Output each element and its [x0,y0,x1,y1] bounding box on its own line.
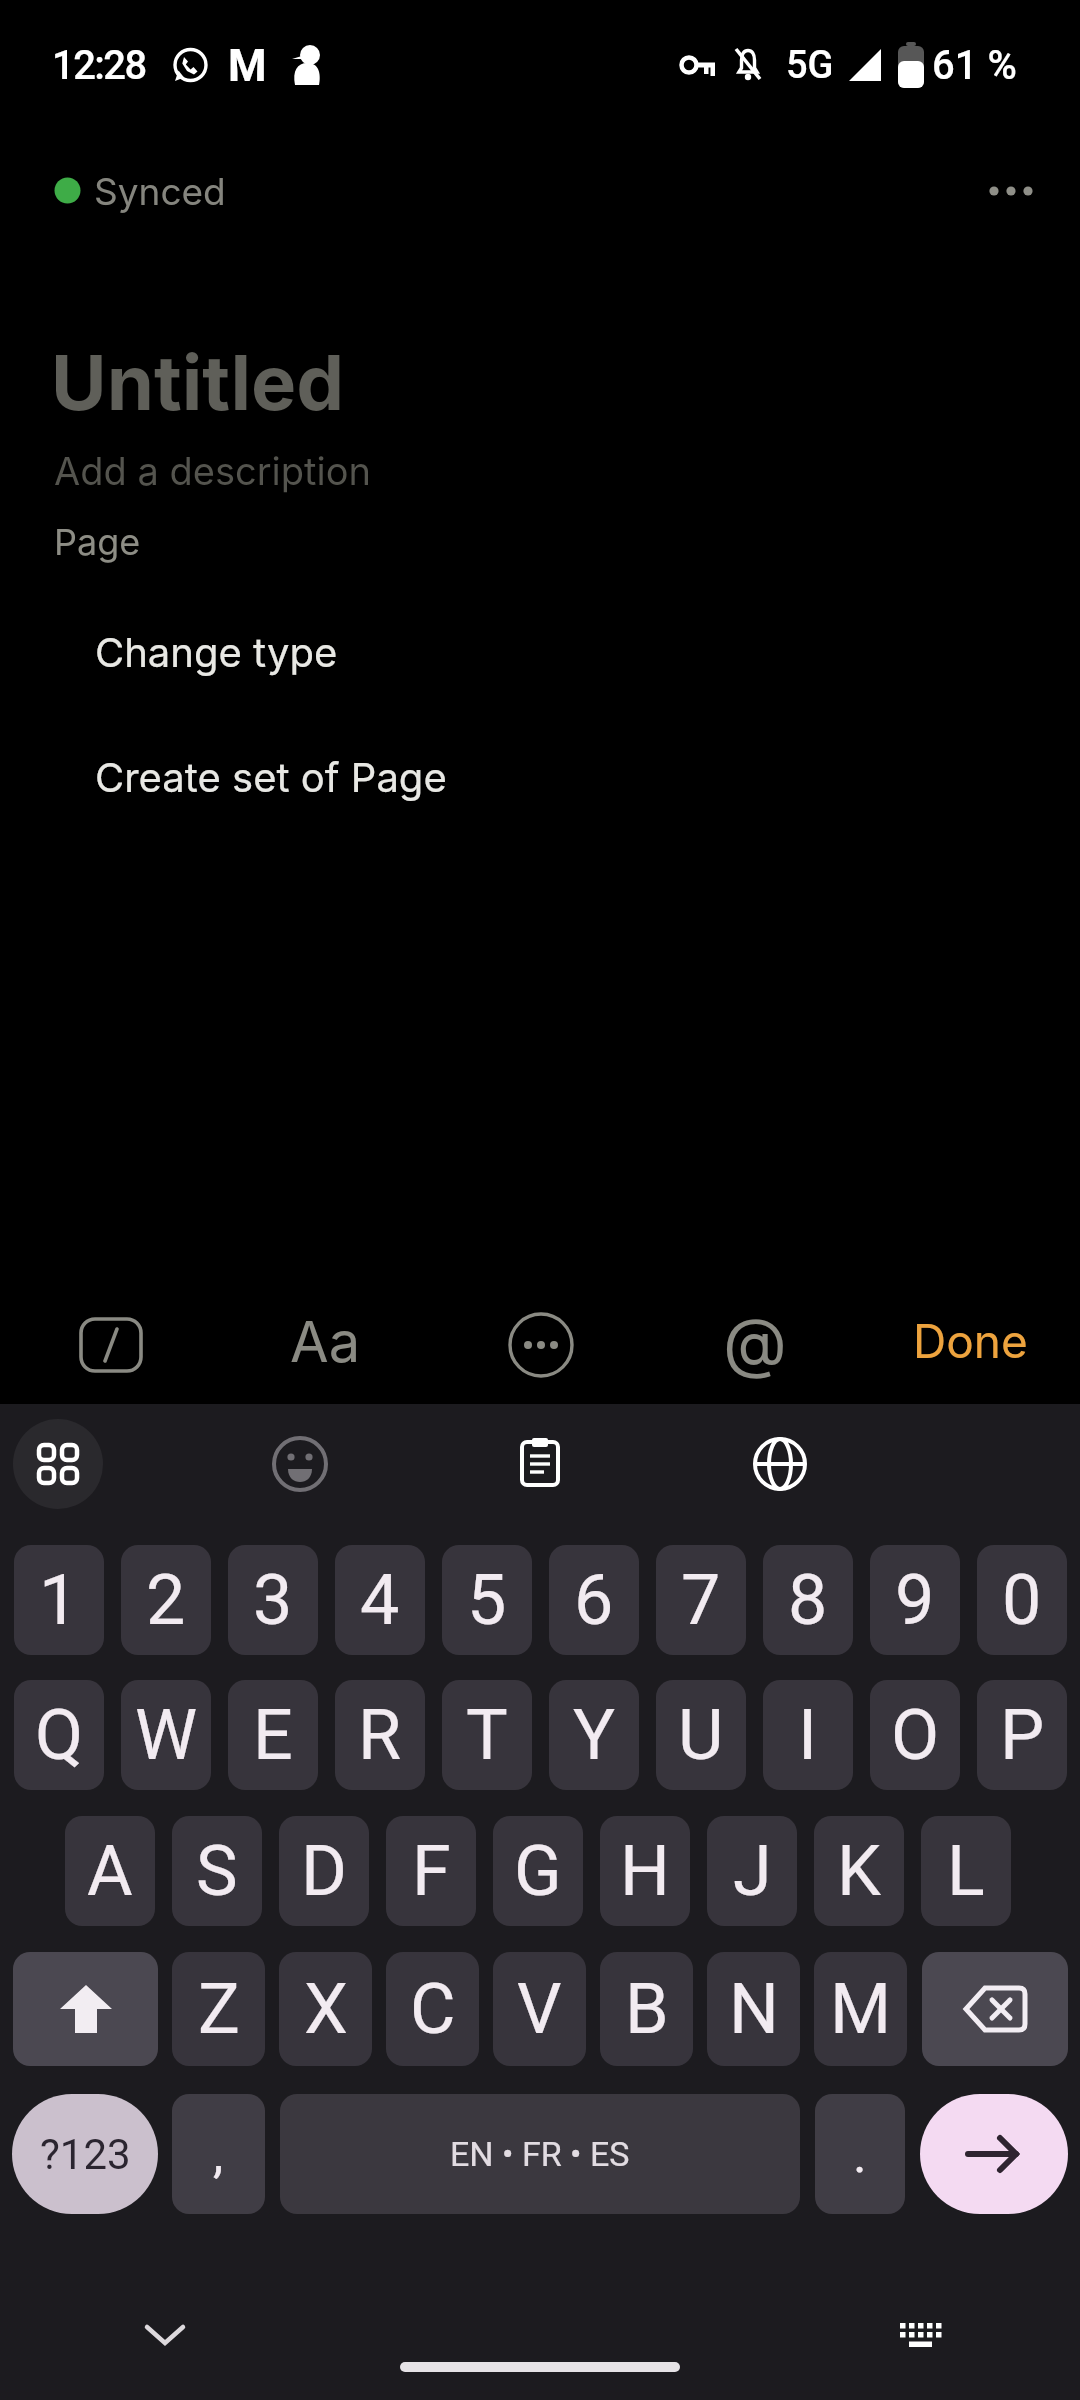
staticText: 12:28 [52,42,146,89]
button[interactable]: 9 [870,1545,960,1655]
button[interactable]: Done [905,1303,1035,1379]
button[interactable]: J [707,1816,797,1926]
button[interactable] [66,1303,156,1387]
button[interactable] [966,158,1056,224]
staticText: M [830,1968,892,2050]
button[interactable]: R [335,1680,425,1790]
staticText: K [837,1830,881,1912]
staticText: C [410,1968,456,2050]
staticText: , [213,2124,224,2185]
button[interactable]: @ [716,1297,794,1387]
button[interactable]: . [815,2094,905,2214]
staticText: Z [198,1968,240,2050]
button[interactable] [13,1952,158,2066]
staticText: T [466,1694,508,1776]
button[interactable]: 4 [335,1545,425,1655]
button[interactable]: U [656,1680,746,1790]
button[interactable]: V [493,1952,586,2066]
staticText: Done [913,1313,1028,1369]
staticText: F [412,1830,451,1912]
button[interactable]: C [386,1952,479,2066]
staticText: I [798,1694,818,1776]
staticText: 5 [467,1559,507,1641]
staticText: 2 [146,1559,186,1641]
staticText: EN • FR • ES [450,2134,630,2174]
button[interactable]: 0 [977,1545,1067,1655]
button[interactable]: E [228,1680,318,1790]
staticText: L [947,1830,985,1912]
staticText: G [514,1830,562,1912]
staticText: 5G [786,43,834,88]
staticText: H [620,1830,670,1912]
button[interactable]: I [763,1680,853,1790]
staticText: ?123 [40,2130,131,2179]
button[interactable]: W [121,1680,211,1790]
staticText: 61 % [932,42,1017,89]
button[interactable] [40,156,300,226]
staticText: Q [35,1694,84,1776]
button[interactable] [496,1300,586,1390]
button[interactable] [495,1417,585,1507]
staticText: Page [54,520,141,564]
button[interactable]: X [279,1952,372,2066]
button[interactable] [922,1952,1068,2066]
button[interactable]: A [65,1816,155,1926]
button[interactable]: , [172,2094,265,2214]
button[interactable]: Y [549,1680,639,1790]
staticText: N [729,1968,779,2050]
button[interactable] [120,2300,210,2370]
button[interactable] [880,2300,960,2370]
button[interactable]: M [814,1952,907,2066]
staticText: Change type [95,628,338,676]
staticText: 6 [574,1559,614,1641]
button[interactable] [735,1419,825,1509]
staticText: X [304,1968,348,2050]
staticText: O [891,1694,940,1776]
staticText: P [1000,1694,1045,1776]
button[interactable]: Change type [95,623,515,681]
button[interactable] [920,2094,1068,2214]
button[interactable]: Create set of Page [95,748,575,806]
button[interactable]: N [707,1952,800,2066]
button[interactable]: Z [172,1952,265,2066]
button[interactable]: ?123 [12,2094,158,2214]
button[interactable]: O [870,1680,960,1790]
staticText: M [228,40,267,90]
staticText: 8 [788,1559,828,1641]
button[interactable]: 2 [121,1545,211,1655]
button[interactable] [13,1419,103,1509]
staticText: E [253,1694,293,1776]
staticText: R [358,1694,402,1776]
staticText: Add a description [54,448,371,494]
staticText: 1 [39,1559,79,1641]
button[interactable]: 3 [228,1545,318,1655]
button[interactable]: 5 [442,1545,532,1655]
button[interactable]: K [814,1816,904,1926]
staticText: 0 [1002,1559,1042,1641]
button[interactable]: S [172,1816,262,1926]
button[interactable]: 6 [549,1545,639,1655]
button[interactable]: H [600,1816,690,1926]
button[interactable]: 1 [14,1545,104,1655]
button[interactable]: 7 [656,1545,746,1655]
staticText: A [87,1830,133,1912]
button[interactable]: F [386,1816,476,1926]
button[interactable]: P [977,1680,1067,1790]
staticText: 4 [360,1559,400,1641]
staticText: J [733,1830,772,1912]
button[interactable] [255,1419,345,1509]
button[interactable]: D [279,1816,369,1926]
button[interactable]: Aa [283,1302,367,1382]
staticText: V [517,1968,562,2050]
button[interactable]: T [442,1680,532,1790]
staticText: S [196,1830,238,1912]
staticText: Untitled [51,336,345,428]
staticText: Aa [290,1308,361,1376]
button[interactable]: EN • FR • ES [280,2094,800,2214]
button[interactable]: B [600,1952,693,2066]
button[interactable]: 8 [763,1545,853,1655]
button[interactable]: L [921,1816,1011,1926]
button[interactable]: Q [14,1680,104,1790]
button[interactable]: G [493,1816,583,1926]
staticText: . [853,2124,867,2185]
